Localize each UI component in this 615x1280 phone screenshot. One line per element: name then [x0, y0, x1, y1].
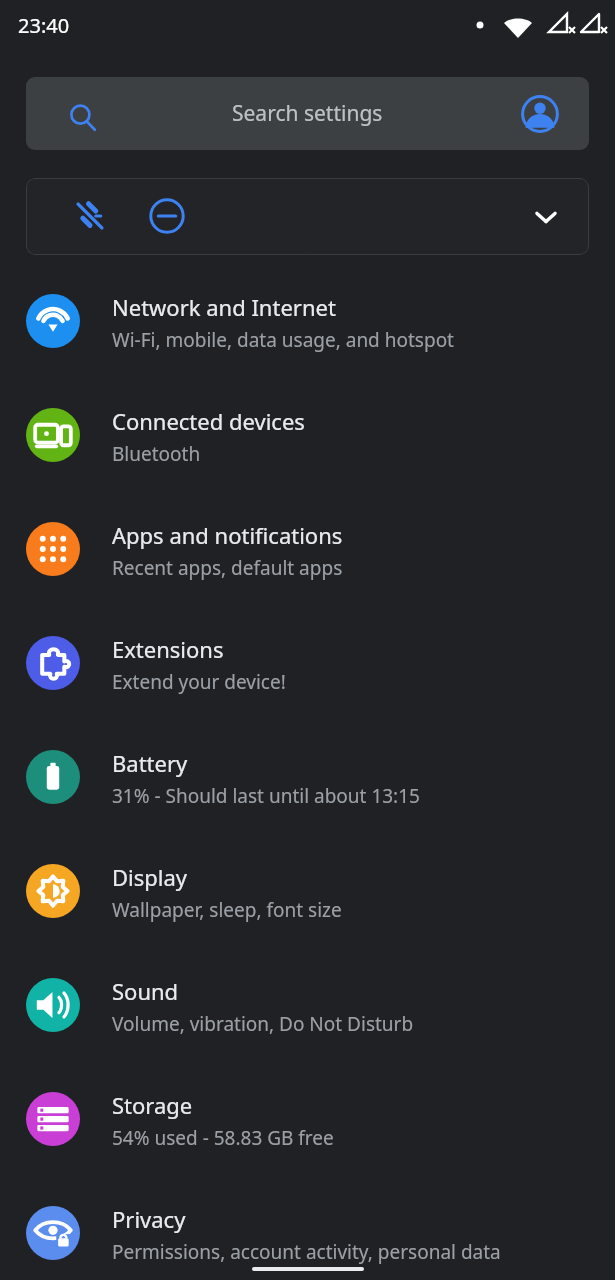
staticText: Battery: [112, 748, 188, 778]
button[interactable]: Extensions: [0, 621, 615, 735]
button[interactable]: Sound: [0, 963, 615, 1077]
staticText: Connected devices: [112, 406, 305, 436]
staticText: Network and Internet: [112, 292, 336, 322]
other: Flashlight off: [72, 198, 108, 234]
button[interactable]: Flashlight off: [26, 178, 589, 255]
staticText: Volume, vibration, Do Not Disturb: [112, 1011, 414, 1037]
staticText: Display: [112, 862, 188, 892]
staticText: Recent apps, default apps: [112, 555, 343, 581]
other: Search: [66, 101, 102, 137]
other: Account: [521, 95, 559, 133]
staticText: Permissions, account activity, personal …: [112, 1239, 501, 1265]
staticText: Storage: [112, 1090, 193, 1120]
staticText: Search settings: [232, 99, 383, 128]
staticText: Privacy: [112, 1204, 186, 1234]
staticText: Extend your device!: [112, 669, 286, 695]
staticText: Extensions: [112, 634, 224, 664]
other: Do not disturb: [149, 198, 185, 234]
button[interactable]: Apps and notifications: [0, 507, 615, 621]
button[interactable]: Display: [0, 849, 615, 963]
other: Expand: [531, 202, 561, 232]
staticText: Sound: [112, 976, 179, 1006]
button[interactable]: Network and Internet: [0, 279, 615, 393]
button[interactable]: Connected devices: [0, 393, 615, 507]
staticText: 54% used - 58.83 GB free: [112, 1125, 334, 1151]
button[interactable]: Privacy: [0, 1191, 615, 1280]
button[interactable]: Storage: [0, 1077, 615, 1191]
staticText: Wi-Fi, mobile, data usage, and hotspot: [112, 327, 454, 353]
staticText: 23:40: [18, 12, 70, 39]
button[interactable]: Battery: [0, 735, 615, 849]
staticText: 31% - Should last until about 13:15: [112, 783, 420, 809]
button[interactable]: Search: [26, 77, 589, 150]
staticText: Bluetooth: [112, 441, 201, 467]
staticText: Wallpaper, sleep, font size: [112, 897, 342, 923]
staticText: Apps and notifications: [112, 520, 343, 550]
